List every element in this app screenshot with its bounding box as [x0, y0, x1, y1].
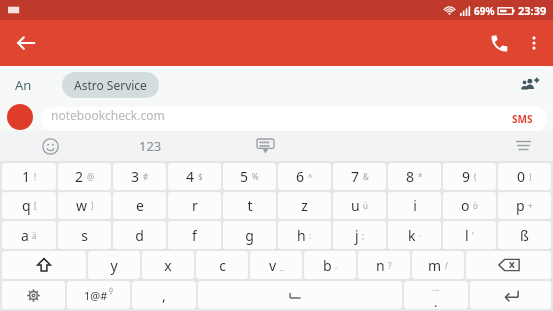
- staticText: [: [34, 200, 37, 211]
- staticText: 5: [240, 167, 249, 186]
- button[interactable]: w: [58, 192, 111, 219]
- staticText: /: [445, 260, 448, 271]
- button[interactable]: z: [278, 192, 331, 219]
- staticText: h: [297, 226, 306, 245]
- button[interactable]: a: [2, 221, 56, 249]
- staticText: u: [351, 196, 360, 215]
- staticText: o: [461, 196, 470, 215]
- staticText: 23:39: [518, 3, 547, 18]
- staticText: Astro Service: [74, 77, 147, 93]
- staticText: %: [252, 171, 259, 182]
- button[interactable]: 8: [388, 163, 441, 190]
- button[interactable]: 5: [223, 163, 276, 190]
- button[interactable]: s: [58, 221, 111, 249]
- button[interactable]: Enter: [470, 281, 551, 309]
- button[interactable]: c: [196, 251, 248, 279]
- button[interactable]: Shift: [2, 251, 86, 279]
- button[interactable]: Keyboard menu: [493, 131, 553, 161]
- button[interactable]: 9: [443, 163, 496, 190]
- button[interactable]: Hide keyboard: [200, 131, 330, 161]
- button[interactable]: r: [168, 192, 221, 219]
- staticText: :: [309, 230, 312, 241]
- button[interactable]: p: [498, 192, 551, 219]
- button[interactable]: k: [388, 221, 441, 249]
- button[interactable]: Backspace: [466, 251, 551, 279]
- staticText: 6: [296, 167, 305, 186]
- staticText: ,: [162, 286, 166, 305]
- button[interactable]: 0: [498, 163, 551, 190]
- button[interactable]: 1: [2, 163, 56, 190]
- staticText: (: [474, 171, 477, 182]
- button[interactable]: t: [223, 192, 276, 219]
- staticText: .: [434, 293, 438, 309]
- button[interactable]: Attach: [7, 104, 33, 130]
- staticText: #: [143, 171, 149, 182]
- button[interactable]: 4: [168, 163, 221, 190]
- staticText: z: [301, 196, 308, 215]
- staticText: ...: [432, 281, 440, 293]
- button[interactable]: m: [412, 251, 464, 279]
- staticText: 3: [131, 167, 140, 186]
- button[interactable]: u: [333, 192, 386, 219]
- button[interactable]: g: [223, 221, 276, 249]
- staticText: *: [418, 171, 423, 182]
- button[interactable]: d: [113, 221, 166, 249]
- button[interactable]: Call: [479, 23, 519, 63]
- button[interactable]: v: [250, 251, 302, 279]
- button[interactable]: ,: [132, 281, 196, 309]
- button[interactable]: i: [388, 192, 441, 219]
- button[interactable]: notebookcheck.com: [41, 107, 547, 131]
- button[interactable]: h: [278, 221, 331, 249]
- button[interactable]: 1@#: [67, 281, 130, 309]
- staticText: q: [22, 196, 31, 215]
- staticText: e: [136, 196, 144, 215]
- staticText: !: [34, 171, 37, 182]
- button[interactable]: Add recipient: [513, 69, 545, 101]
- button[interactable]: 6: [278, 163, 331, 190]
- staticText: 9: [462, 167, 471, 186]
- button[interactable]: Astro Service: [62, 72, 159, 98]
- staticText: ß: [520, 226, 529, 245]
- staticText: ^: [308, 171, 313, 182]
- staticText: ]: [91, 200, 94, 211]
- staticText: ): [529, 171, 532, 182]
- staticText: d: [135, 226, 144, 245]
- staticText: l: [465, 226, 469, 245]
- staticText: r: [192, 196, 198, 215]
- staticText: x: [164, 256, 172, 275]
- staticText: .: [335, 260, 338, 271]
- button[interactable]: Back: [6, 23, 46, 63]
- button[interactable]: b: [304, 251, 356, 279]
- staticText: ü: [363, 200, 368, 211]
- button[interactable]: ...: [404, 281, 468, 309]
- button[interactable]: 7: [333, 163, 386, 190]
- button[interactable]: f: [168, 221, 221, 249]
- button[interactable]: j: [333, 221, 386, 249]
- staticText: ': [472, 230, 474, 241]
- staticText: y: [110, 256, 118, 275]
- staticText: n: [376, 256, 385, 275]
- staticText: 8: [406, 167, 415, 186]
- staticText: k: [408, 226, 416, 245]
- button[interactable]: o: [443, 192, 496, 219]
- staticText: ?: [388, 260, 392, 271]
- button[interactable]: Space: [198, 281, 402, 309]
- button[interactable]: y: [88, 251, 140, 279]
- staticText: f: [192, 226, 197, 245]
- staticText: s: [81, 226, 88, 245]
- button[interactable]: 123: [100, 131, 200, 161]
- button[interactable]: l: [443, 221, 496, 249]
- button[interactable]: 3: [113, 163, 166, 190]
- staticText: +: [528, 200, 533, 211]
- staticText: $: [198, 171, 203, 182]
- button[interactable]: n: [358, 251, 410, 279]
- button[interactable]: Keyboard settings: [2, 281, 65, 309]
- button[interactable]: e: [113, 192, 166, 219]
- staticText: j: [355, 226, 359, 245]
- button[interactable]: Emoji: [0, 131, 100, 161]
- button[interactable]: More options: [519, 26, 549, 60]
- button[interactable]: x: [142, 251, 194, 279]
- button[interactable]: ß: [498, 221, 551, 249]
- button[interactable]: q: [2, 192, 56, 219]
- button[interactable]: 2: [58, 163, 111, 190]
